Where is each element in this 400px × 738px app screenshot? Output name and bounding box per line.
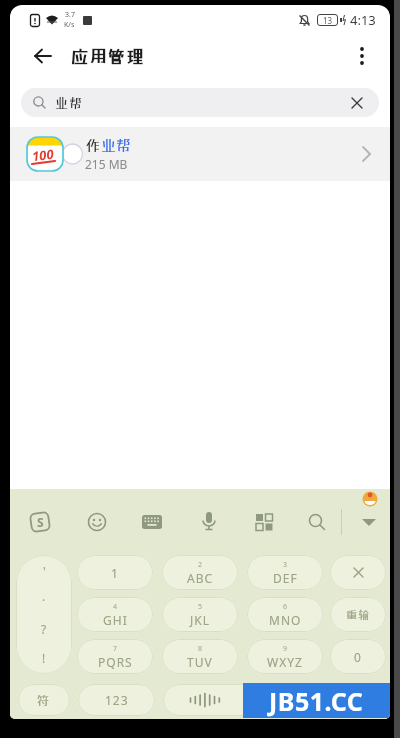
staticText: 作	[85, 136, 101, 154]
staticText: 8	[198, 644, 203, 654]
button[interactable]: 4	[77, 597, 153, 632]
button[interactable]	[198, 510, 220, 532]
staticText: 100	[31, 145, 55, 165]
staticText: 4	[113, 602, 118, 612]
staticText: 123	[105, 692, 129, 708]
staticText: 4:13	[350, 11, 376, 29]
button[interactable]: 3	[247, 555, 323, 590]
button[interactable]	[330, 684, 386, 716]
button[interactable]: 1	[77, 555, 153, 590]
button[interactable]: 重输	[330, 597, 386, 632]
staticText: '	[43, 563, 46, 579]
staticText: 6	[283, 602, 288, 612]
button[interactable]	[163, 684, 322, 716]
button[interactable]: 123	[78, 684, 155, 716]
staticText: 业帮	[55, 95, 84, 110]
button[interactable]: 100	[10, 127, 390, 181]
staticText: ABC	[187, 570, 214, 586]
button[interactable]	[330, 555, 386, 590]
button[interactable]: '	[16, 555, 72, 674]
button[interactable]: 8	[162, 639, 238, 674]
staticText: 2	[198, 560, 203, 570]
staticText: DEF	[273, 570, 298, 586]
staticText: TUV	[187, 654, 213, 670]
staticText: JB51.CC	[269, 684, 364, 718]
staticText: ?	[41, 621, 47, 637]
staticText: 重输	[346, 608, 370, 621]
button[interactable]: 符	[18, 684, 70, 716]
button[interactable]	[306, 511, 328, 533]
button[interactable]: 5	[162, 597, 238, 632]
staticText: 13	[323, 15, 333, 26]
staticText: MNO	[269, 612, 302, 628]
button[interactable]	[350, 44, 374, 68]
staticText: 符	[37, 693, 51, 707]
button[interactable]: 7	[77, 639, 153, 674]
button[interactable]	[31, 44, 55, 68]
staticText: PQRS	[98, 654, 133, 670]
button[interactable]	[253, 511, 275, 533]
button[interactable]	[86, 511, 108, 533]
button[interactable]: S	[29, 511, 51, 533]
staticText: 1	[111, 565, 119, 581]
staticText: 5	[198, 602, 203, 612]
staticText: 3.7	[65, 10, 75, 20]
staticText: ·	[42, 592, 46, 608]
button[interactable]	[358, 511, 380, 533]
staticText: JKL	[190, 612, 210, 628]
staticText: 0	[354, 649, 362, 665]
staticText: 业帮	[101, 136, 132, 154]
staticText: !	[42, 650, 46, 666]
button[interactable]	[141, 511, 163, 533]
button[interactable]: 9	[247, 639, 323, 674]
button[interactable]: 2	[162, 555, 238, 590]
button[interactable]: 6	[247, 597, 323, 632]
staticText: 7	[113, 644, 118, 654]
staticText: 应用管理	[71, 46, 145, 66]
staticText: K/s	[64, 20, 75, 30]
staticText: S	[37, 514, 44, 530]
button[interactable]: 业帮	[21, 88, 379, 117]
staticText: 9	[283, 644, 288, 654]
button[interactable]: 0	[330, 639, 386, 674]
staticText: 215 MB	[85, 156, 128, 172]
staticText: GHI	[103, 612, 128, 628]
staticText: 3	[283, 560, 288, 570]
staticText: WXYZ	[267, 654, 303, 670]
